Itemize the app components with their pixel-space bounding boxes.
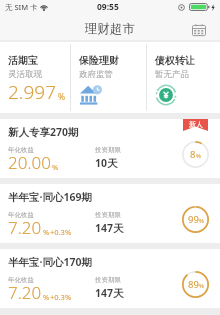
staticText: 年化收益 — [8, 146, 34, 154]
button[interactable]: 保险理财 — [71, 42, 146, 113]
staticText: 99 — [188, 213, 199, 226]
staticText: % — [199, 282, 204, 290]
staticText: 无 SIM 卡 — [5, 2, 38, 12]
staticText: % — [196, 152, 201, 160]
staticText: 半年宝·同心170期 — [8, 255, 92, 269]
staticText: +0.3% — [50, 227, 72, 237]
staticText: 新人专享270期 — [8, 125, 79, 139]
staticText: 年化收益 — [8, 276, 34, 284]
staticText: 2.997 — [8, 79, 57, 105]
staticText: 147天 — [95, 221, 124, 235]
staticText: 债权转让 — [155, 54, 195, 67]
button[interactable]: 活期宝 — [0, 42, 70, 113]
staticText: 7.20 — [8, 281, 42, 304]
staticText: 投资期限 — [95, 276, 121, 284]
staticText: % — [52, 162, 59, 172]
button[interactable]: 半年宝·同心169期 — [0, 184, 220, 243]
staticText: 09:55 — [97, 1, 119, 13]
staticText: 投资期限 — [95, 211, 121, 219]
staticText: 暂无产品 — [155, 69, 189, 80]
staticText: % — [199, 217, 204, 225]
button[interactable]: 新人专享270期 — [0, 119, 220, 178]
staticText: 89 — [188, 278, 199, 291]
staticText: 20.00 — [8, 151, 51, 174]
staticText: 投资期限 — [95, 146, 121, 154]
staticText: 7.20 — [8, 216, 42, 239]
staticText: % — [43, 292, 50, 302]
staticText: 年化收益 — [8, 211, 34, 219]
staticText: 活期宝 — [8, 54, 38, 67]
staticText: 政府监管 — [79, 69, 113, 80]
staticText: 新人 — [189, 120, 203, 129]
staticText: +0.3% — [50, 292, 72, 302]
button[interactable]: 债权转让 — [147, 42, 220, 113]
staticText: 147天 — [95, 286, 124, 300]
staticText: 理财超市 — [85, 21, 135, 37]
staticText: 半年宝·同心169期 — [8, 190, 92, 204]
staticText: 8 — [190, 148, 196, 161]
staticText: 10天 — [95, 156, 118, 170]
staticText: 灵活取现 — [8, 69, 42, 80]
button[interactable]: Calendar — [192, 21, 220, 33]
staticText: % — [58, 91, 66, 103]
staticText: % — [43, 227, 50, 237]
button[interactable]: 半年宝·同心170期 — [0, 249, 220, 308]
staticText: 保险理财 — [79, 54, 119, 67]
